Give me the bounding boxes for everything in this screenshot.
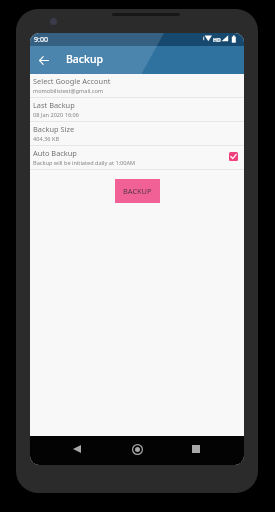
staticText: momobilistest@gmail.com — [33, 87, 104, 95]
button[interactable]: Home — [127, 439, 147, 459]
button[interactable]: Recents — [186, 439, 206, 459]
staticText: Backup Size — [33, 124, 75, 134]
button[interactable]: Back — [33, 49, 55, 71]
staticText: 08 Jan 2020 16:06 — [33, 111, 79, 119]
staticText: HD — [213, 36, 221, 43]
staticText: 404.36 KB — [33, 135, 60, 143]
button[interactable]: Auto Backup — [30, 146, 244, 169]
button[interactable]: Backup Size — [30, 122, 244, 145]
staticText: Backup will be initiated daily at 1:00AM — [33, 159, 136, 167]
staticText: Auto Backup — [33, 148, 77, 158]
staticText: 9:00 — [34, 35, 48, 45]
staticText: BACKUP — [123, 186, 152, 196]
staticText: Last Backup — [33, 100, 75, 110]
button[interactable]: Select Google Account — [30, 74, 244, 97]
button[interactable]: Back — [67, 439, 87, 459]
button[interactable]: BACKUP — [115, 179, 160, 203]
staticText: Select Google Account — [33, 76, 111, 86]
button[interactable]: Last Backup — [30, 98, 244, 121]
staticText: Backup — [66, 52, 103, 66]
